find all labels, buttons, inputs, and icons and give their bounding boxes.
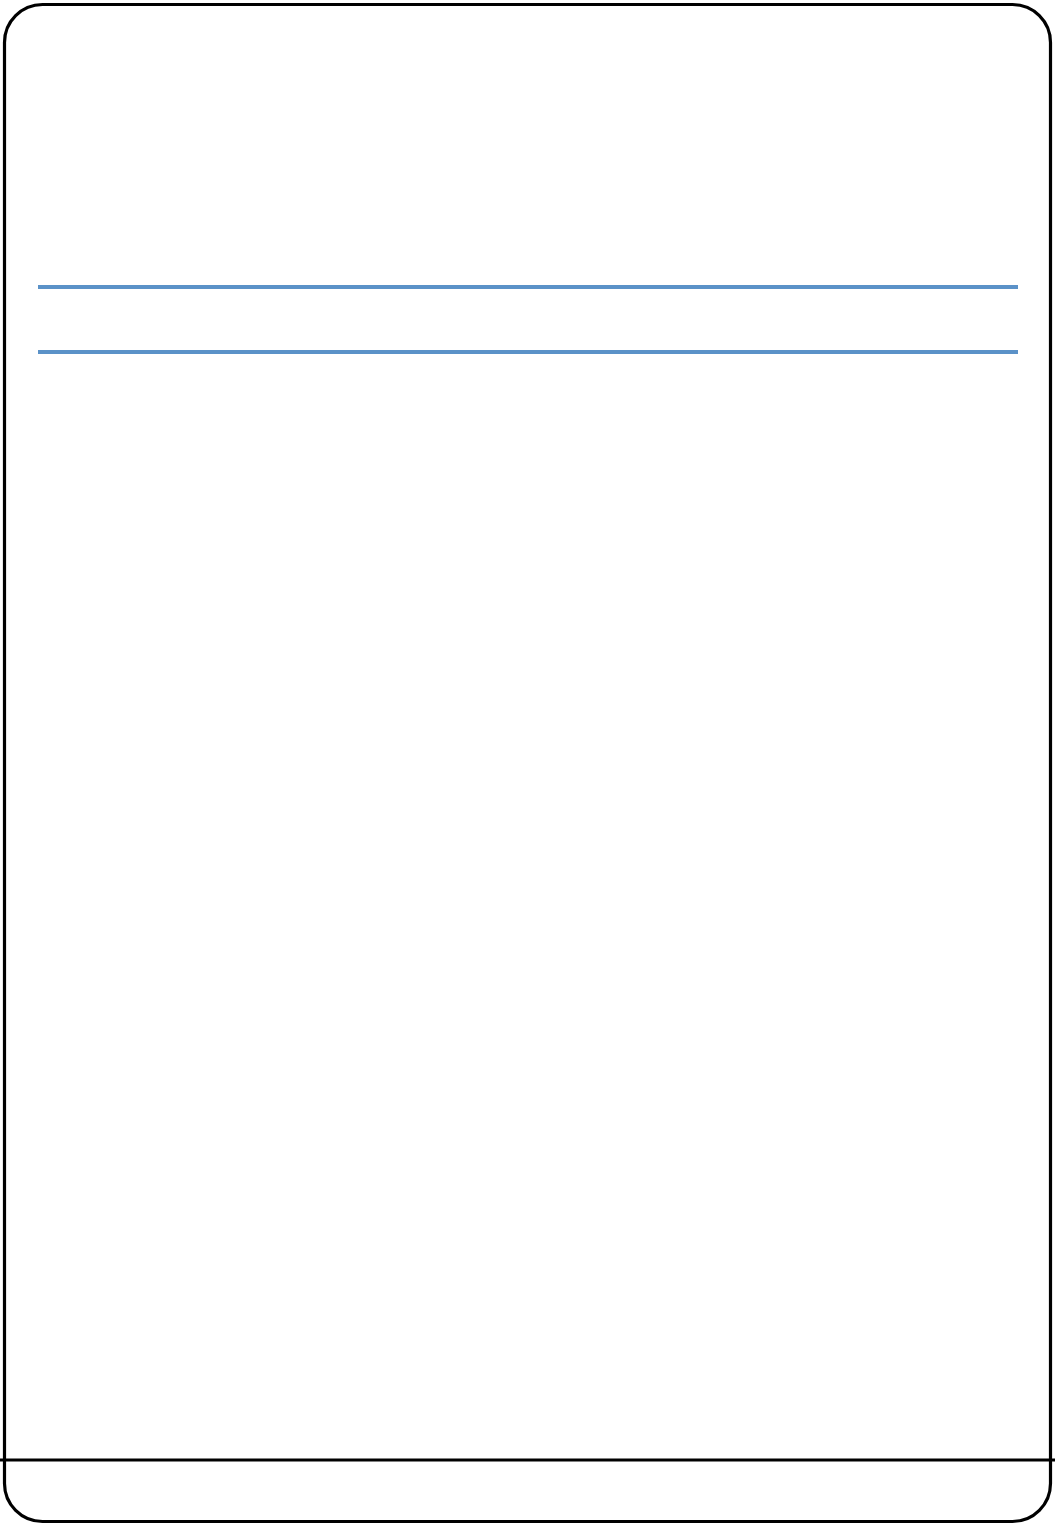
button[interactable]: Text field bbox=[38, 289, 1018, 354]
button[interactable]: Bottom bar bbox=[0, 1460, 1055, 1526]
